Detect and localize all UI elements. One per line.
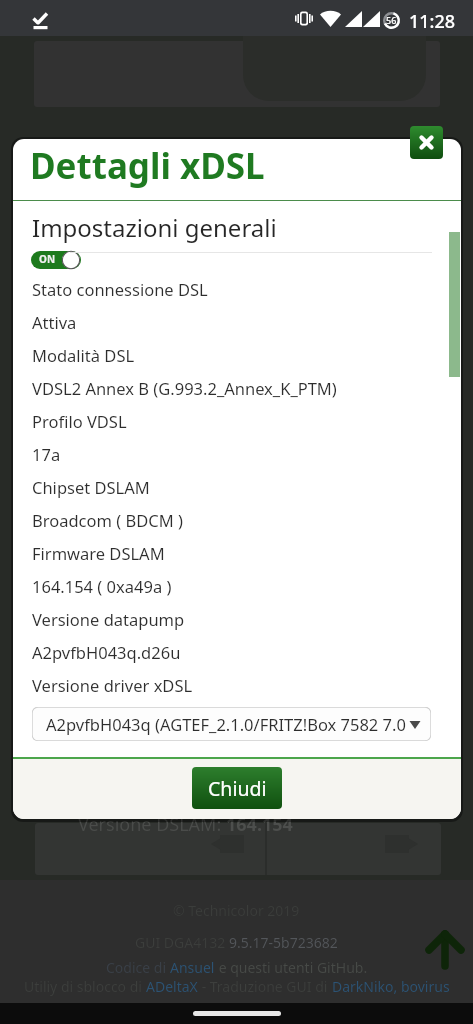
- staticText: Broadcom ( BDCM ): [32, 509, 183, 531]
- staticText: Utiliy di sblocco di: [24, 977, 146, 996]
- staticText: ADeltaX: [146, 977, 198, 996]
- staticText: Chiudi: [208, 775, 267, 802]
- staticText: Dettagli xDSL: [30, 142, 265, 190]
- staticText: Versione DSLAM:: [78, 812, 226, 837]
- staticText: Profilo VDSL: [32, 410, 127, 432]
- staticText: Ansuel: [170, 958, 215, 977]
- staticText: 56: [386, 14, 397, 26]
- staticText: 164.154: [226, 812, 293, 837]
- staticText: A2pvfbH043q.d26u: [32, 641, 181, 663]
- staticText: 9.5.17-5b723682: [229, 933, 338, 952]
- staticText: A2pvfbH043q (AGTEF_2.1.0/FRITZ!Box 7582 …: [46, 713, 411, 735]
- button[interactable]: A2pvfbH043q (AGTEF_2.1.0/FRITZ!Box 7582 …: [32, 707, 431, 741]
- staticText: 164.154 ( 0xa49a ): [32, 575, 172, 597]
- staticText: - Traduzione GUI di: [198, 977, 332, 996]
- staticText: Codice di: [106, 958, 170, 977]
- staticText: Impostazioni generali: [32, 211, 277, 244]
- staticText: DarkNiko, bovirus: [332, 977, 450, 996]
- button[interactable]: Chiudi: [192, 767, 282, 809]
- staticText: Modalità DSL: [32, 344, 135, 366]
- staticText: ON: [39, 252, 56, 266]
- staticText: 11:28: [409, 9, 456, 34]
- staticText: Firmware DSLAM: [32, 542, 165, 564]
- staticText: Chipset DSLAM: [32, 476, 150, 498]
- button[interactable]: Scroll to top: [418, 923, 472, 977]
- button[interactable]: ON: [31, 251, 81, 269]
- staticText: Versione driver xDSL: [32, 674, 193, 696]
- staticText: GUI DGA4132: [135, 933, 229, 952]
- staticText: e questi utenti GitHub.: [215, 958, 368, 977]
- staticText: Stato connessione DSL: [32, 278, 208, 300]
- staticText: 17a: [32, 443, 61, 465]
- button[interactable]: Close: [410, 126, 443, 159]
- staticText: Versione datapump: [32, 608, 185, 630]
- staticText: VDSL2 Annex B (G.993.2_Annex_K_PTM): [32, 377, 337, 399]
- staticText: © Technicolor 2019: [173, 901, 300, 920]
- staticText: Attiva: [32, 311, 77, 333]
